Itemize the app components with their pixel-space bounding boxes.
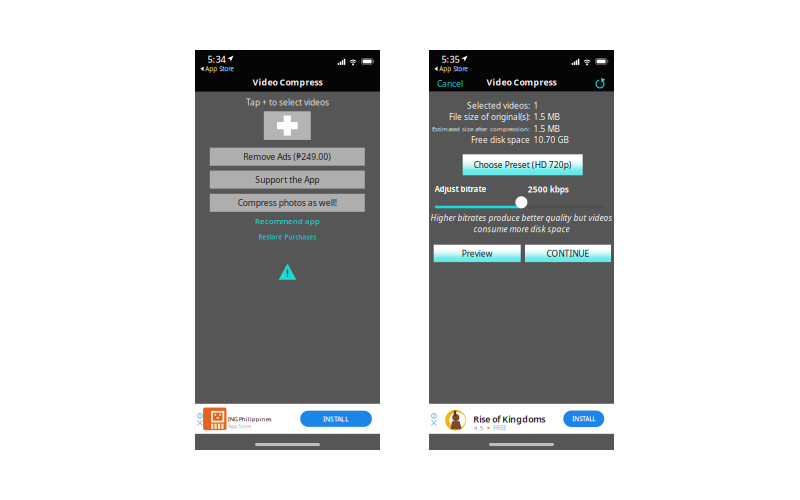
- button[interactable]: Compress photos as well!: [210, 194, 365, 212]
- staticText: Selected videos:: [467, 100, 530, 111]
- button[interactable]: CONTINUE: [525, 245, 611, 262]
- staticText: App Store: [205, 65, 234, 73]
- staticText: 2500 kbps: [528, 184, 569, 195]
- staticText: 1.5 MB: [533, 123, 559, 135]
- button[interactable]: Remove Ads (₱249.00): [210, 148, 365, 166]
- button[interactable]: Cancel: [437, 77, 469, 90]
- staticText: App Store: [228, 423, 251, 430]
- staticText: 1: [533, 100, 538, 111]
- staticText: Rise of Kingdoms: [473, 413, 545, 425]
- staticText: Choose Preset (HD 720p): [474, 159, 572, 170]
- button[interactable]: [264, 111, 311, 140]
- staticText: consume more disk space: [473, 223, 569, 234]
- staticText: 4.5: [474, 424, 484, 432]
- staticText: Higher bitrates produce better quality b…: [430, 212, 612, 223]
- button[interactable]: Recommend app: [195, 216, 380, 226]
- staticText: Remove Ads (₱249.00): [243, 151, 331, 162]
- staticText: CONTINUE: [546, 248, 589, 259]
- staticText: Preview: [462, 248, 493, 259]
- button[interactable]: INSTALL: [563, 411, 604, 427]
- staticText: Estimated size after compression:: [432, 125, 530, 133]
- staticText: ★: [486, 424, 491, 431]
- button[interactable]: INSTALL: [300, 411, 372, 427]
- button[interactable]: Restore Purchases: [195, 233, 380, 241]
- staticText: App Store: [439, 65, 468, 73]
- staticText: Tap + to select videos: [246, 96, 329, 108]
- staticText: Video Compress: [486, 76, 556, 88]
- staticText: 1.5 MB: [533, 111, 559, 123]
- staticText: Recommend app: [255, 216, 320, 226]
- staticText: Adjust bitrate: [435, 184, 487, 194]
- staticText: 5:34: [207, 53, 225, 65]
- button[interactable]: Support the App: [210, 171, 365, 189]
- staticText: Support the App: [255, 174, 319, 185]
- staticText: INSTALL: [572, 415, 595, 423]
- staticText: Compress photos as well!: [238, 197, 337, 209]
- staticText: Cancel: [437, 78, 463, 90]
- staticText: ING Philippines: [228, 415, 272, 423]
- button[interactable]: Preview: [434, 245, 521, 262]
- staticText: Video Compress: [252, 76, 322, 88]
- staticText: 5:35: [441, 53, 459, 65]
- button[interactable]: Refresh: [594, 78, 606, 89]
- staticText: Restore Purchases: [258, 233, 316, 241]
- staticText: INSTALL: [323, 414, 349, 423]
- staticText: 10.70 GB: [533, 134, 568, 146]
- staticText: Free disk space: [471, 134, 530, 146]
- staticText: File size of original(s):: [449, 111, 530, 123]
- staticText: FREE: [493, 424, 506, 432]
- button[interactable]: Choose Preset (HD 720p): [463, 154, 583, 175]
